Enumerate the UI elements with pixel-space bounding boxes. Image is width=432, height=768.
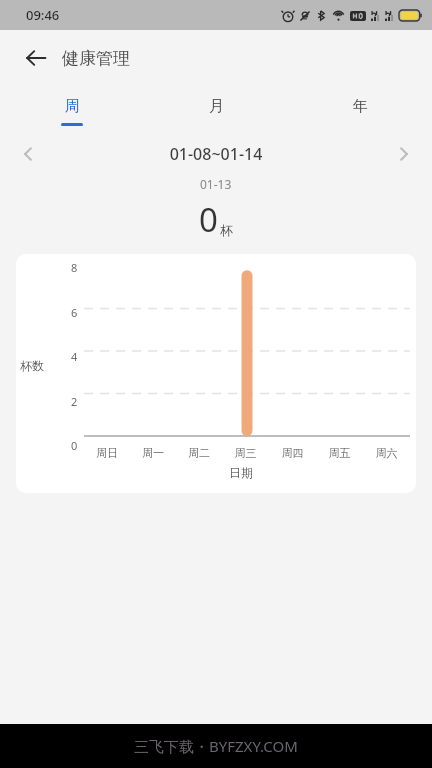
staticText: 健康管理 (62, 48, 130, 69)
staticText: 杯 (220, 222, 233, 238)
staticText: 周 (65, 97, 80, 116)
staticText: 09:46 (26, 6, 60, 24)
staticText: 周四 (269, 446, 316, 460)
staticText: 月 (209, 97, 224, 116)
staticText: 4 (71, 349, 78, 364)
button[interactable]: 年 (288, 86, 432, 132)
staticText: 周二 (176, 446, 222, 460)
staticText: 6 (71, 305, 78, 320)
staticText: 周六 (363, 446, 410, 460)
staticText: 周一 (130, 446, 176, 460)
button[interactable]: 周 (0, 86, 144, 132)
staticText: 周五 (316, 446, 363, 460)
staticText: 周日 (84, 446, 130, 460)
button[interactable]: 杯数 (16, 254, 416, 493)
staticText: 0 (199, 197, 218, 242)
staticText: 周三 (222, 446, 269, 460)
staticText: 01-08~01-14 (46, 143, 386, 165)
staticText: 三飞下载・BYFZXY.COM (134, 736, 298, 756)
staticText: 01-13 (200, 176, 232, 192)
button[interactable]: Back (14, 36, 58, 80)
button[interactable]: Previous week (10, 136, 46, 172)
staticText: 年 (353, 97, 368, 116)
staticText: 8 (71, 260, 78, 275)
staticText: 0 (71, 438, 78, 453)
button[interactable]: Next week (386, 136, 422, 172)
staticText: 杯数 (20, 358, 44, 373)
staticText: 日期 (229, 465, 253, 480)
button[interactable]: 月 (144, 86, 288, 132)
staticText: 2 (71, 394, 78, 409)
